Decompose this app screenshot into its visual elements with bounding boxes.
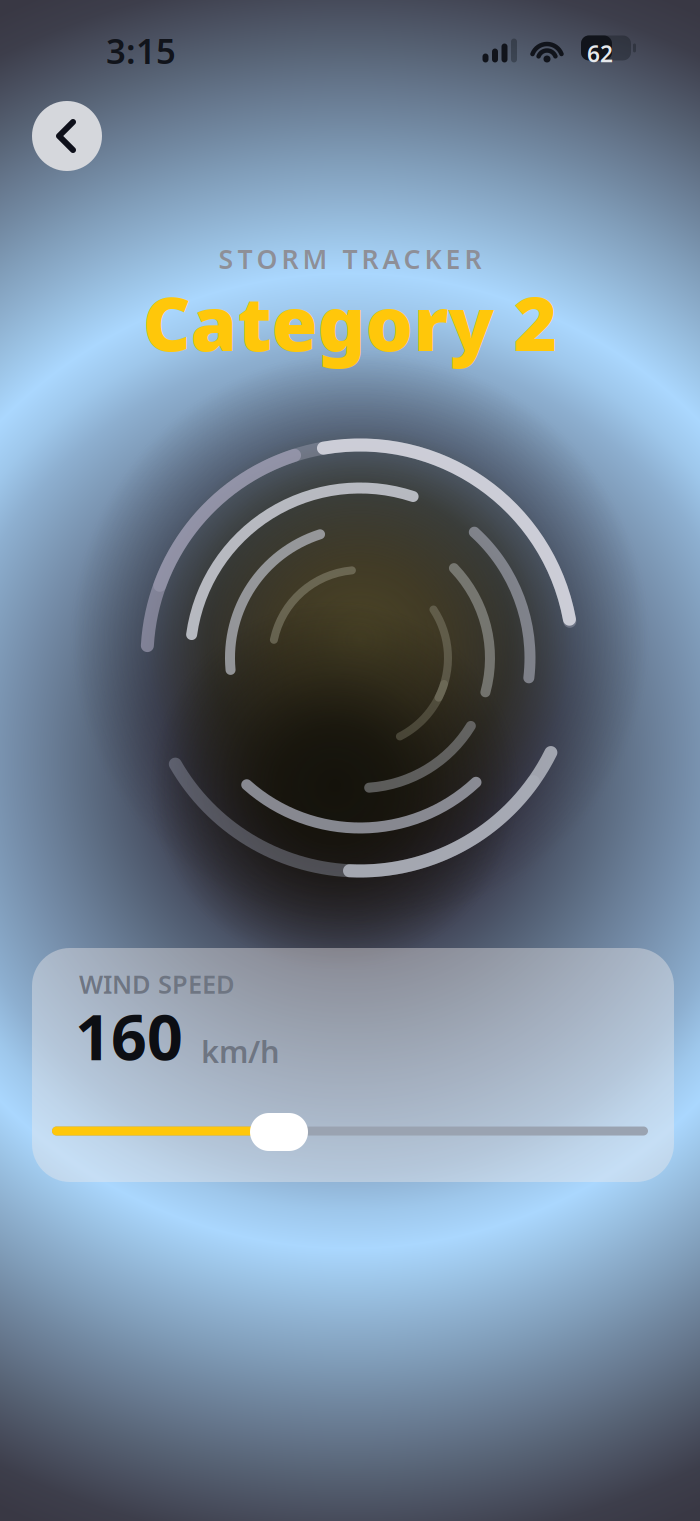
staticText: km/h (201, 1031, 280, 1071)
button[interactable]: Back (32, 101, 102, 171)
staticText: 3:15 (106, 27, 176, 73)
staticText: STORM TRACKER (218, 241, 481, 276)
staticText: 160 (75, 994, 183, 1078)
staticText: Category 2 (142, 272, 557, 372)
staticText: WIND SPEED (79, 967, 235, 1001)
staticText: 62 (587, 38, 613, 68)
